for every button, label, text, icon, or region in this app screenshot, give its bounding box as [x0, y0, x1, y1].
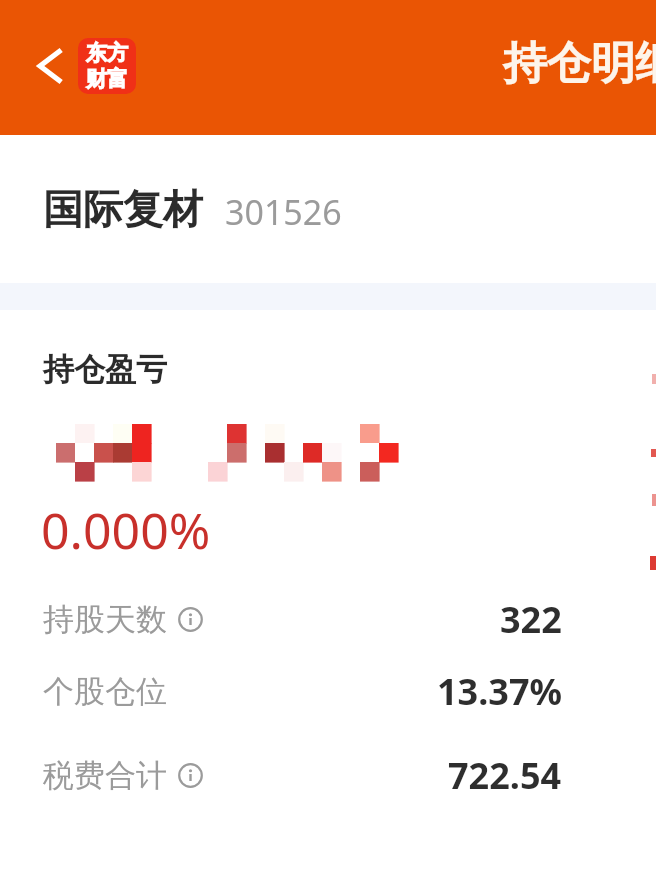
- staticText: 持仓盈亏: [43, 350, 167, 389]
- staticText: 国际复材: [43, 184, 203, 234]
- staticText: 322: [500, 595, 562, 644]
- button[interactable]: 持股天数: [0, 594, 656, 644]
- other: Info about 持股天数: [178, 607, 203, 632]
- staticText: 持股天数: [43, 600, 167, 639]
- staticText: 东方: [86, 40, 128, 66]
- staticText: 722.54: [448, 751, 562, 800]
- staticText: 13.37%: [437, 667, 562, 716]
- button[interactable]: East Money logo: [78, 38, 136, 94]
- staticText: 财富: [86, 66, 128, 92]
- staticText: 个股仓位: [43, 672, 167, 711]
- staticText: 持仓明细: [503, 36, 656, 91]
- staticText: 0.000%: [41, 496, 211, 564]
- button[interactable]: 个股仓位: [0, 666, 656, 716]
- button[interactable]: 税费合计: [0, 750, 656, 800]
- staticText: 税费合计: [43, 756, 167, 795]
- staticText: 301526: [225, 189, 342, 235]
- button[interactable]: Back: [10, 34, 74, 98]
- other: Info about 税费合计: [178, 763, 203, 788]
